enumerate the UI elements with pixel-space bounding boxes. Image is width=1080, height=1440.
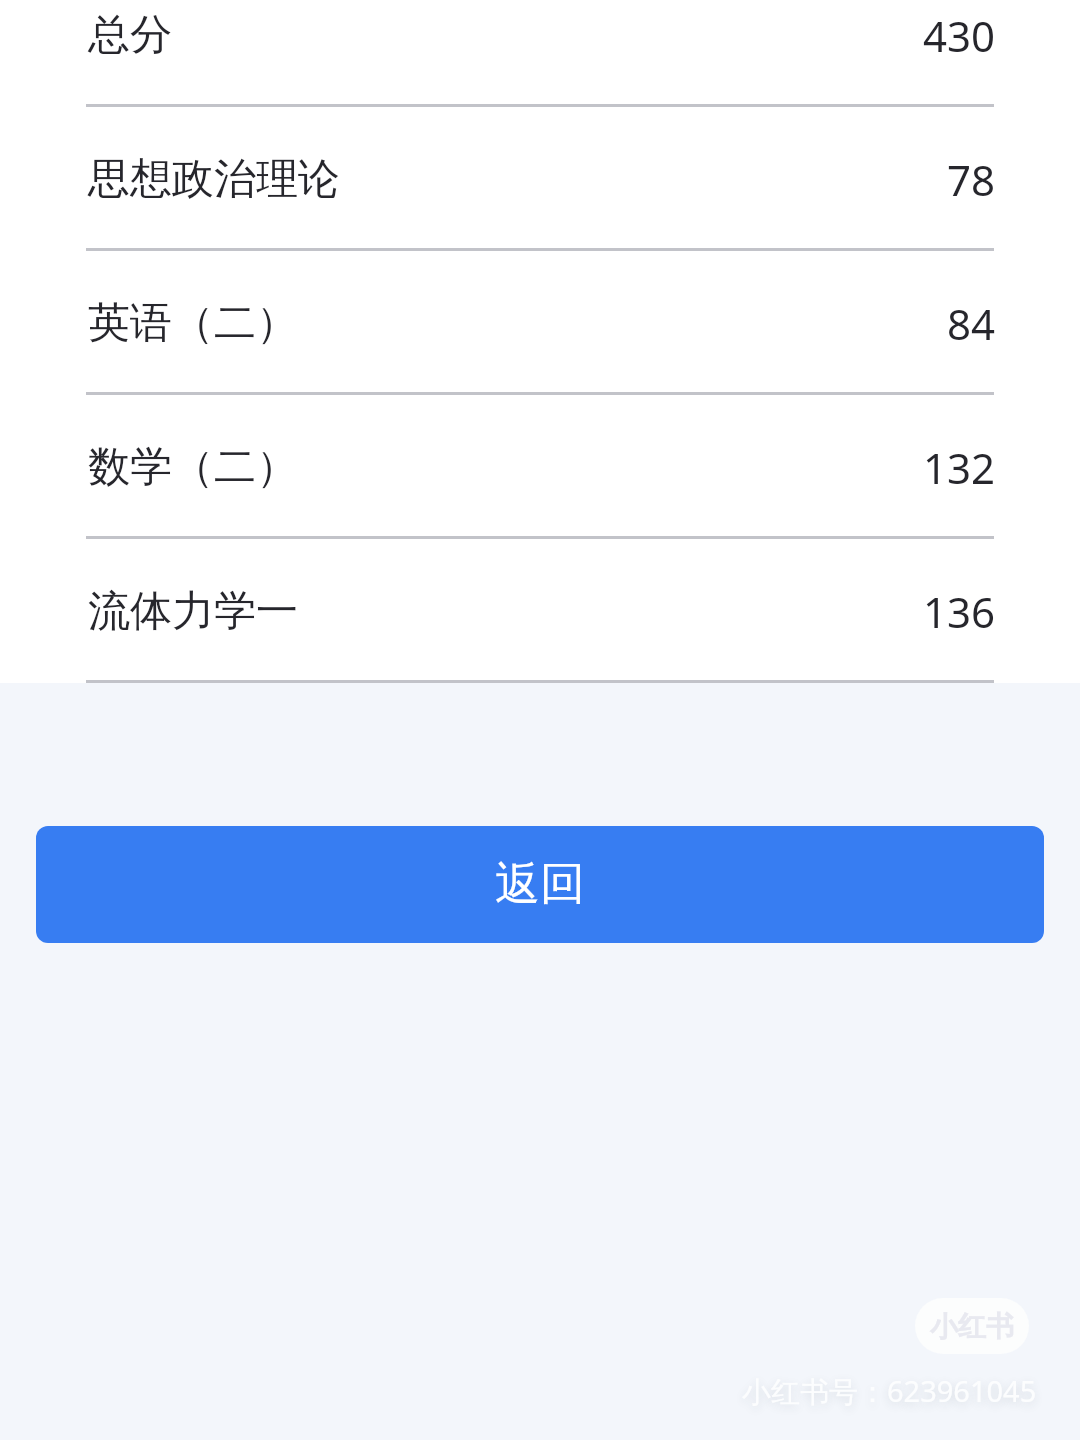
button[interactable]: 数学（二） [0,395,1080,539]
button[interactable]: 流体力学一 [0,539,1080,683]
staticText: 132 [923,439,996,496]
button[interactable]: 思想政治理论 [0,107,1080,251]
staticText: 小红书号：623961045 [742,1371,1037,1411]
staticText: 返回 [495,856,585,913]
staticText: 136 [923,583,996,640]
staticText: 英语（二） [88,297,298,350]
staticText: 小红书 [930,1309,1014,1344]
staticText: 数学（二） [88,441,298,494]
staticText: 430 [923,7,996,64]
staticText: 78 [947,151,996,208]
staticText: 总分 [88,9,172,62]
button[interactable]: 总分 [0,0,1080,107]
button[interactable]: 返回 [36,826,1044,943]
staticText: 84 [947,295,996,352]
staticText: 思想政治理论 [88,153,340,206]
staticText: 流体力学一 [88,585,298,638]
button[interactable]: 英语（二） [0,251,1080,395]
other: 小红书 watermark [915,1298,1029,1354]
